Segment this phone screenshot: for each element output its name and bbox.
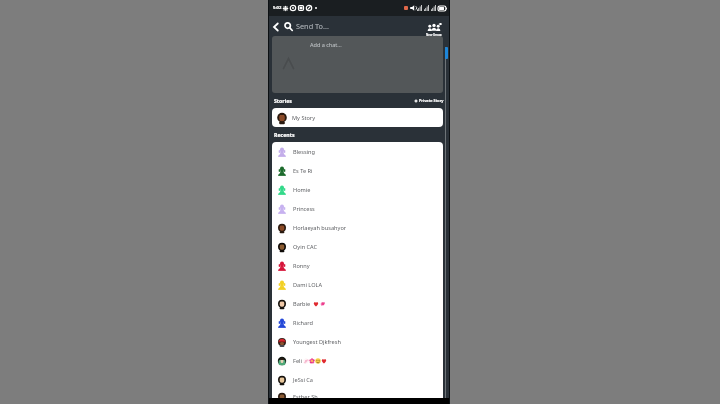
button[interactable]: Dami LOLA (272, 275, 443, 294)
button[interactable]: Princess (272, 199, 443, 218)
staticText: Oyin CAC (293, 243, 318, 251)
staticText: Stories (274, 97, 292, 104)
button[interactable]: Back (269, 20, 282, 33)
other: Search (282, 20, 295, 33)
staticText: Youngest Djkfresh (293, 338, 341, 346)
button[interactable]: Horlaeyah busahyor (272, 218, 443, 237)
staticText: Private Story (419, 98, 444, 103)
staticText: Ronny (293, 262, 310, 270)
button[interactable]: Richard (272, 313, 443, 332)
staticText: New Group (426, 33, 442, 37)
staticText: Feli (293, 357, 302, 365)
button[interactable]: Ronny (272, 256, 443, 275)
staticText: Blessing (293, 148, 315, 156)
staticText: Recents (274, 131, 295, 138)
staticText: JeSsi Ca (293, 376, 314, 384)
staticText: Homie (293, 186, 311, 194)
staticText: Barbie (293, 300, 312, 308)
staticText: Es Te Ri (293, 167, 313, 175)
button[interactable]: Add a chat... (272, 36, 443, 93)
button[interactable]: Blessing (272, 142, 443, 161)
button[interactable]: Esther Sh (272, 389, 443, 404)
button[interactable]: JeSsi Ca (272, 370, 443, 389)
staticText: Richard (293, 319, 313, 327)
button[interactable]: Es Te Ri (272, 161, 443, 180)
button[interactable]: Homie (272, 180, 443, 199)
button[interactable]: Barbie (272, 294, 443, 313)
button[interactable]: Youngest Djkfresh (272, 332, 443, 351)
staticText: Esther Sh (293, 393, 318, 401)
button[interactable]: Oyin CAC (272, 237, 443, 256)
staticText: Dami LOLA (293, 281, 323, 289)
staticText: Horlaeyah busahyor (293, 224, 347, 232)
staticText: 5:02 (273, 5, 282, 11)
staticText: Send To... (296, 21, 329, 31)
staticText: Princess (293, 205, 315, 213)
button[interactable]: Feli (272, 351, 443, 370)
staticText: My Story (292, 114, 316, 122)
button[interactable]: My Story (272, 108, 443, 127)
staticText: Add a chat... (310, 41, 342, 48)
button[interactable]: New Group (426, 23, 442, 37)
button[interactable]: Private Story (414, 98, 444, 103)
